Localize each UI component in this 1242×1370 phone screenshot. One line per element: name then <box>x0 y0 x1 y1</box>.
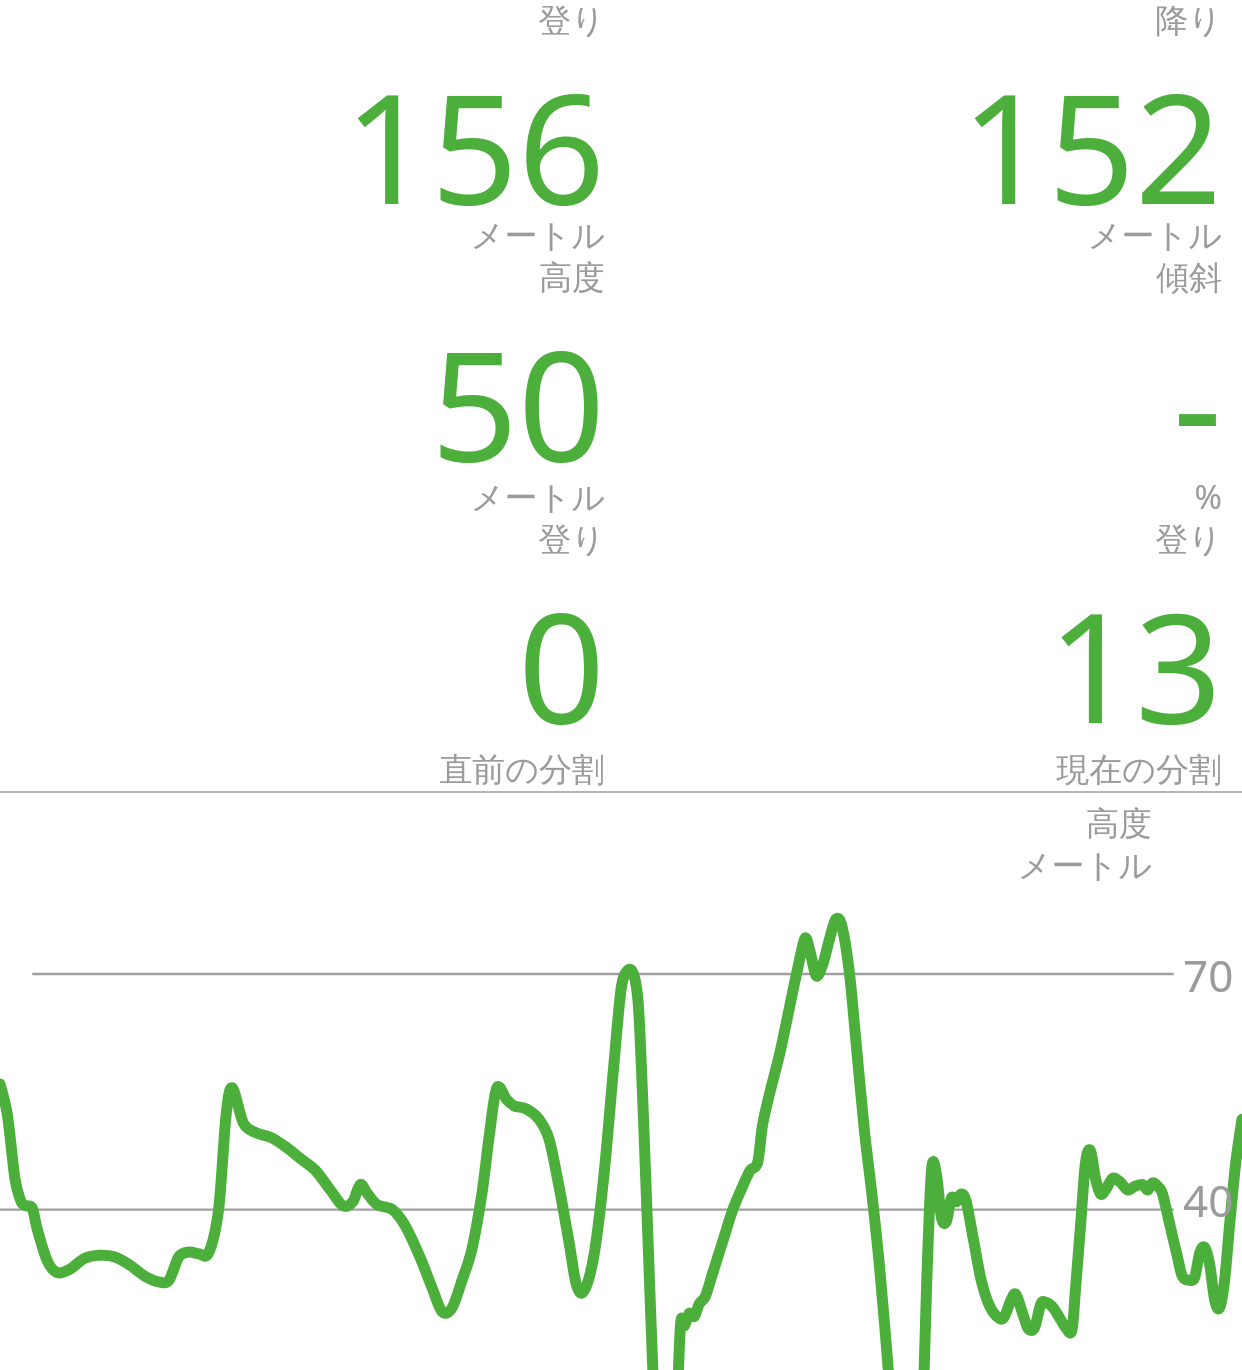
staticText: メートル <box>0 215 605 257</box>
button[interactable]: Elevation chart <box>0 887 1242 1370</box>
button[interactable]: 登り <box>0 519 605 791</box>
staticText: 156 <box>0 42 605 215</box>
staticText: 50 <box>0 299 605 477</box>
staticText: 直前の分割 <box>0 749 605 791</box>
staticText: メートル <box>0 477 605 519</box>
button[interactable]: 登り <box>621 519 1222 791</box>
button[interactable]: 登り <box>0 0 605 257</box>
button[interactable]: 傾斜 <box>621 257 1222 519</box>
staticText: - <box>621 299 1222 474</box>
staticText: % <box>621 474 1222 519</box>
staticText: 登り <box>621 519 1222 561</box>
staticText: メートル <box>621 215 1222 257</box>
staticText: 現在の分割 <box>621 749 1222 791</box>
staticText: 40 <box>1183 1170 1234 1230</box>
button[interactable]: 降り <box>621 0 1222 257</box>
staticText: メートル <box>0 845 1152 887</box>
staticText: 登り <box>0 519 605 561</box>
staticText: 0 <box>0 561 605 749</box>
staticText: 高度 <box>0 803 1152 845</box>
button[interactable]: 高度 <box>0 257 605 519</box>
staticText: 152 <box>621 42 1222 215</box>
staticText: 13 <box>621 561 1222 749</box>
staticText: 高度 <box>0 257 605 299</box>
staticText: 登り <box>0 0 605 42</box>
staticText: 傾斜 <box>621 257 1222 299</box>
staticText: 70 <box>1183 945 1234 1005</box>
staticText: 降り <box>621 0 1222 42</box>
